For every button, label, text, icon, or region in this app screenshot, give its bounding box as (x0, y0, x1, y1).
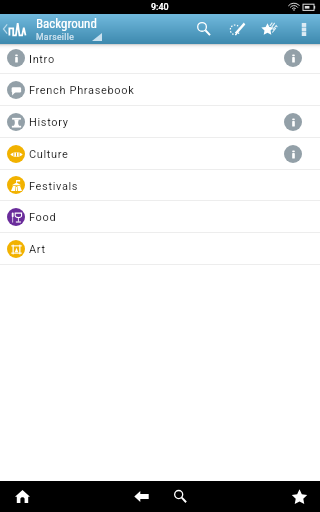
button[interactable]: French Phrasebook (0, 74, 320, 106)
button[interactable]: Favorites (254, 14, 287, 44)
button[interactable]: Favorites (278, 481, 320, 512)
staticText: French Phrasebook (29, 84, 135, 97)
button[interactable]: More options (287, 14, 320, 44)
staticText: Marseille (36, 32, 75, 42)
button[interactable]: Back (123, 481, 159, 512)
button[interactable]: Back (0, 14, 34, 44)
button[interactable]: Background (34, 14, 187, 44)
staticText: Background (36, 16, 97, 31)
staticText: Intro (29, 53, 55, 66)
staticText: Art (29, 243, 46, 256)
button[interactable]: Info (284, 49, 302, 67)
staticText: Food (29, 211, 57, 224)
button[interactable]: History (0, 106, 320, 138)
button[interactable]: Home (0, 481, 44, 512)
button[interactable]: Food (0, 201, 320, 233)
button[interactable]: Festivals (0, 170, 320, 201)
staticText: History (29, 116, 69, 129)
button[interactable]: Info (284, 145, 302, 163)
staticText: 9:40 (151, 2, 169, 13)
staticText: Culture (29, 148, 69, 161)
button[interactable]: Search (162, 481, 198, 512)
button[interactable]: Info (284, 113, 302, 131)
button[interactable]: Intro (0, 43, 320, 74)
button[interactable]: Art (0, 233, 320, 265)
button[interactable]: Culture (0, 138, 320, 170)
button[interactable]: Search (187, 14, 221, 44)
staticText: Festivals (29, 180, 79, 193)
button[interactable]: Edit (221, 14, 254, 44)
